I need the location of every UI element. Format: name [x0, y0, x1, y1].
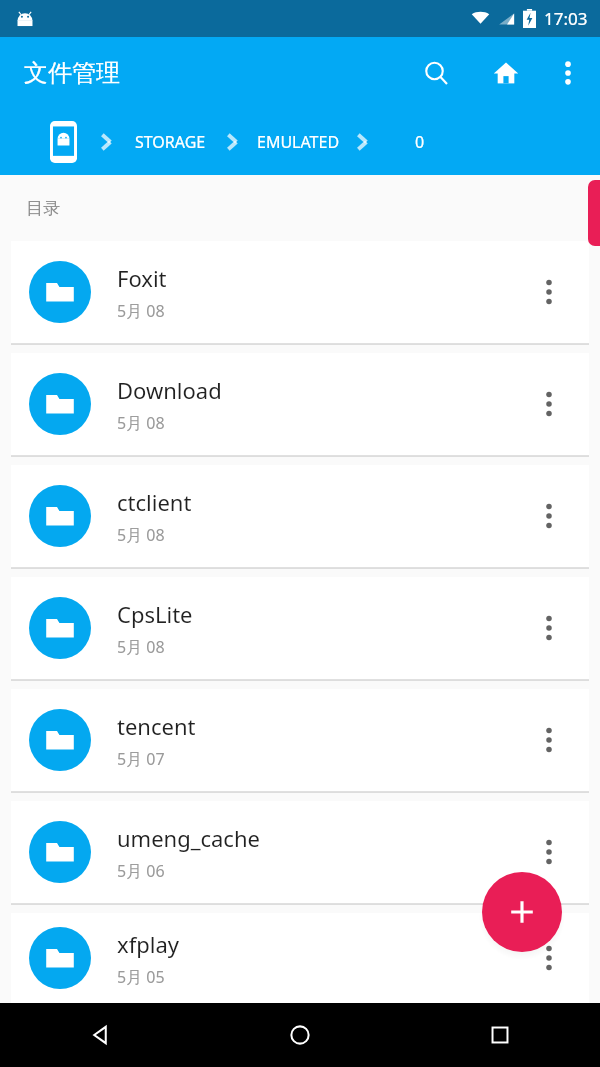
button[interactable]: Item options for ctclient: [527, 494, 571, 538]
button[interactable]: Back: [0, 1003, 200, 1067]
staticText: EMULATED: [257, 131, 340, 153]
staticText: xfplay: [117, 929, 179, 959]
staticText: STORAGE: [135, 131, 206, 153]
staticText: umeng_cache: [117, 823, 260, 853]
staticText: 5月 08: [117, 636, 165, 658]
staticText: 5月 06: [117, 860, 165, 882]
button[interactable]: Add: [482, 872, 562, 952]
button[interactable]: Home: [200, 1003, 400, 1067]
button[interactable]: 0: [415, 131, 425, 153]
button[interactable]: CpsLite: [11, 577, 589, 679]
button[interactable]: Item options for xfplay: [527, 936, 571, 980]
staticText: 5月 07: [117, 748, 165, 770]
button[interactable]: Item options for Download: [527, 382, 571, 426]
staticText: Download: [117, 375, 222, 405]
staticText: 文件管理: [24, 58, 120, 88]
button[interactable]: Item options for CpsLite: [527, 606, 571, 650]
staticText: Foxit: [117, 263, 167, 293]
button[interactable]: More options: [544, 49, 592, 97]
staticText: tencent: [117, 711, 196, 741]
button[interactable]: Foxit: [11, 241, 589, 343]
staticText: 17:03: [544, 7, 588, 30]
button[interactable]: EMULATED: [257, 131, 340, 153]
button[interactable]: Recent apps: [400, 1003, 600, 1067]
staticText: 5月 08: [117, 412, 165, 434]
button[interactable]: Item options for Foxit: [527, 270, 571, 314]
button[interactable]: Item options for tencent: [527, 718, 571, 762]
button[interactable]: Item options for umeng_cache: [527, 830, 571, 874]
staticText: 5月 05: [117, 966, 165, 988]
button[interactable]: tencent: [11, 689, 589, 791]
button[interactable]: STORAGE: [135, 131, 206, 153]
staticText: 0: [415, 131, 425, 153]
staticText: 5月 08: [117, 524, 165, 546]
staticText: ctclient: [117, 487, 192, 517]
button[interactable]: Download: [11, 353, 589, 455]
staticText: CpsLite: [117, 599, 193, 629]
button[interactable]: ctclient: [11, 465, 589, 567]
staticText: 5月 08: [117, 300, 165, 322]
button[interactable]: Search: [412, 49, 460, 97]
button[interactable]: xfplay: [11, 913, 589, 1003]
button[interactable]: umeng_cache: [11, 801, 589, 903]
staticText: 目录: [26, 198, 60, 219]
button[interactable]: Device storage root: [40, 119, 86, 165]
button[interactable]: Home: [482, 49, 530, 97]
